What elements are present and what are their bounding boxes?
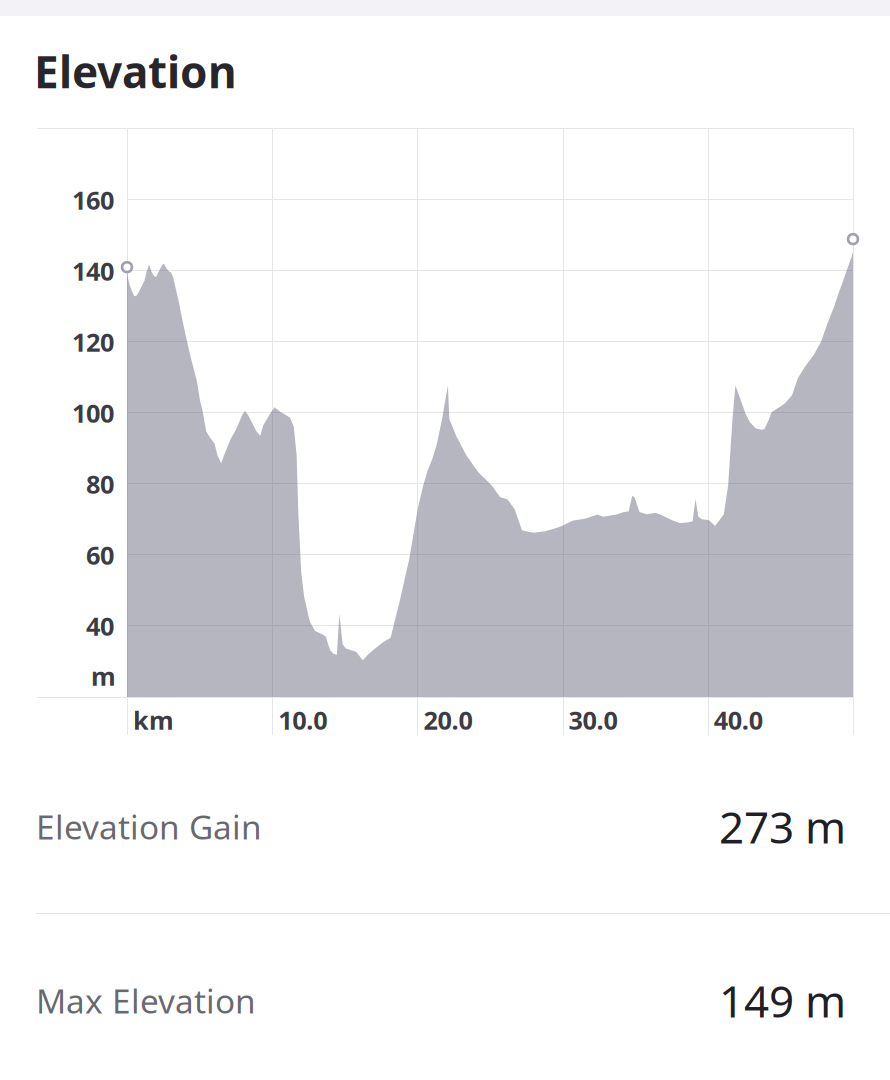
staticText: 30.0 [569, 703, 618, 737]
staticText: 10.0 [278, 703, 327, 737]
staticText: 140 [72, 254, 114, 288]
staticText: Elevation Gain [36, 804, 262, 849]
staticText: 80 [86, 467, 114, 501]
staticText: 60 [86, 538, 114, 572]
staticText: 273 m [719, 797, 846, 856]
staticText: 40 [86, 609, 114, 643]
staticText: 20.0 [423, 703, 472, 737]
staticText: 149 m [719, 971, 846, 1030]
staticText: 100 [72, 396, 114, 430]
staticText: Elevation [34, 42, 237, 100]
staticText: 160 [72, 183, 114, 217]
staticText: km [133, 703, 174, 737]
staticText: 120 [72, 325, 114, 359]
staticText: Max Elevation [36, 978, 256, 1023]
staticText: 40.0 [714, 703, 763, 737]
button[interactable]: Elevation Gain [0, 740, 890, 913]
staticText: m [91, 659, 116, 693]
button[interactable]: Max Elevation [0, 914, 890, 1080]
